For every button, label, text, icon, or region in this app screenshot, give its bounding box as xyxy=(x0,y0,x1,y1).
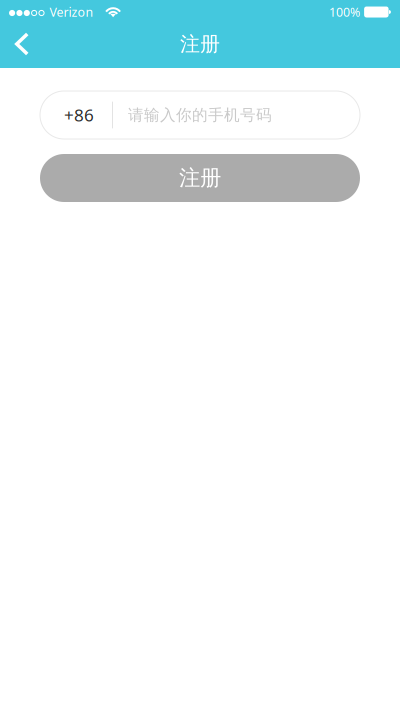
staticText: 100% xyxy=(329,4,360,20)
button[interactable]: +86 xyxy=(40,91,360,139)
staticText: Verizon xyxy=(50,4,94,20)
staticText: 注册 xyxy=(180,31,220,57)
staticText: +86 xyxy=(64,103,94,127)
button[interactable]: Back xyxy=(0,24,44,64)
staticText: 请输入你的手机号码 xyxy=(128,105,272,125)
button[interactable]: 注册 xyxy=(40,154,360,202)
staticText: 注册 xyxy=(179,165,221,191)
